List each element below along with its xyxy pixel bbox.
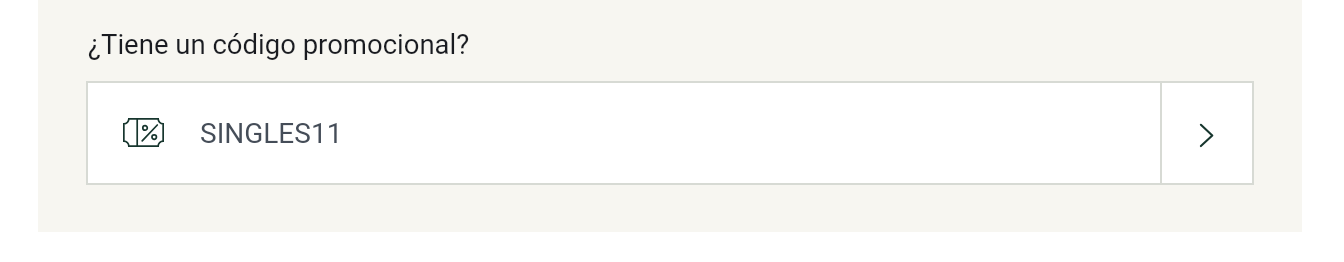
button[interactable]: SINGLES11 bbox=[86, 81, 1160, 185]
staticText: ¿Tiene un código promocional? bbox=[88, 28, 470, 60]
button[interactable]: Ver código promocional bbox=[1160, 81, 1254, 185]
staticText: SINGLES11 bbox=[200, 117, 343, 150]
